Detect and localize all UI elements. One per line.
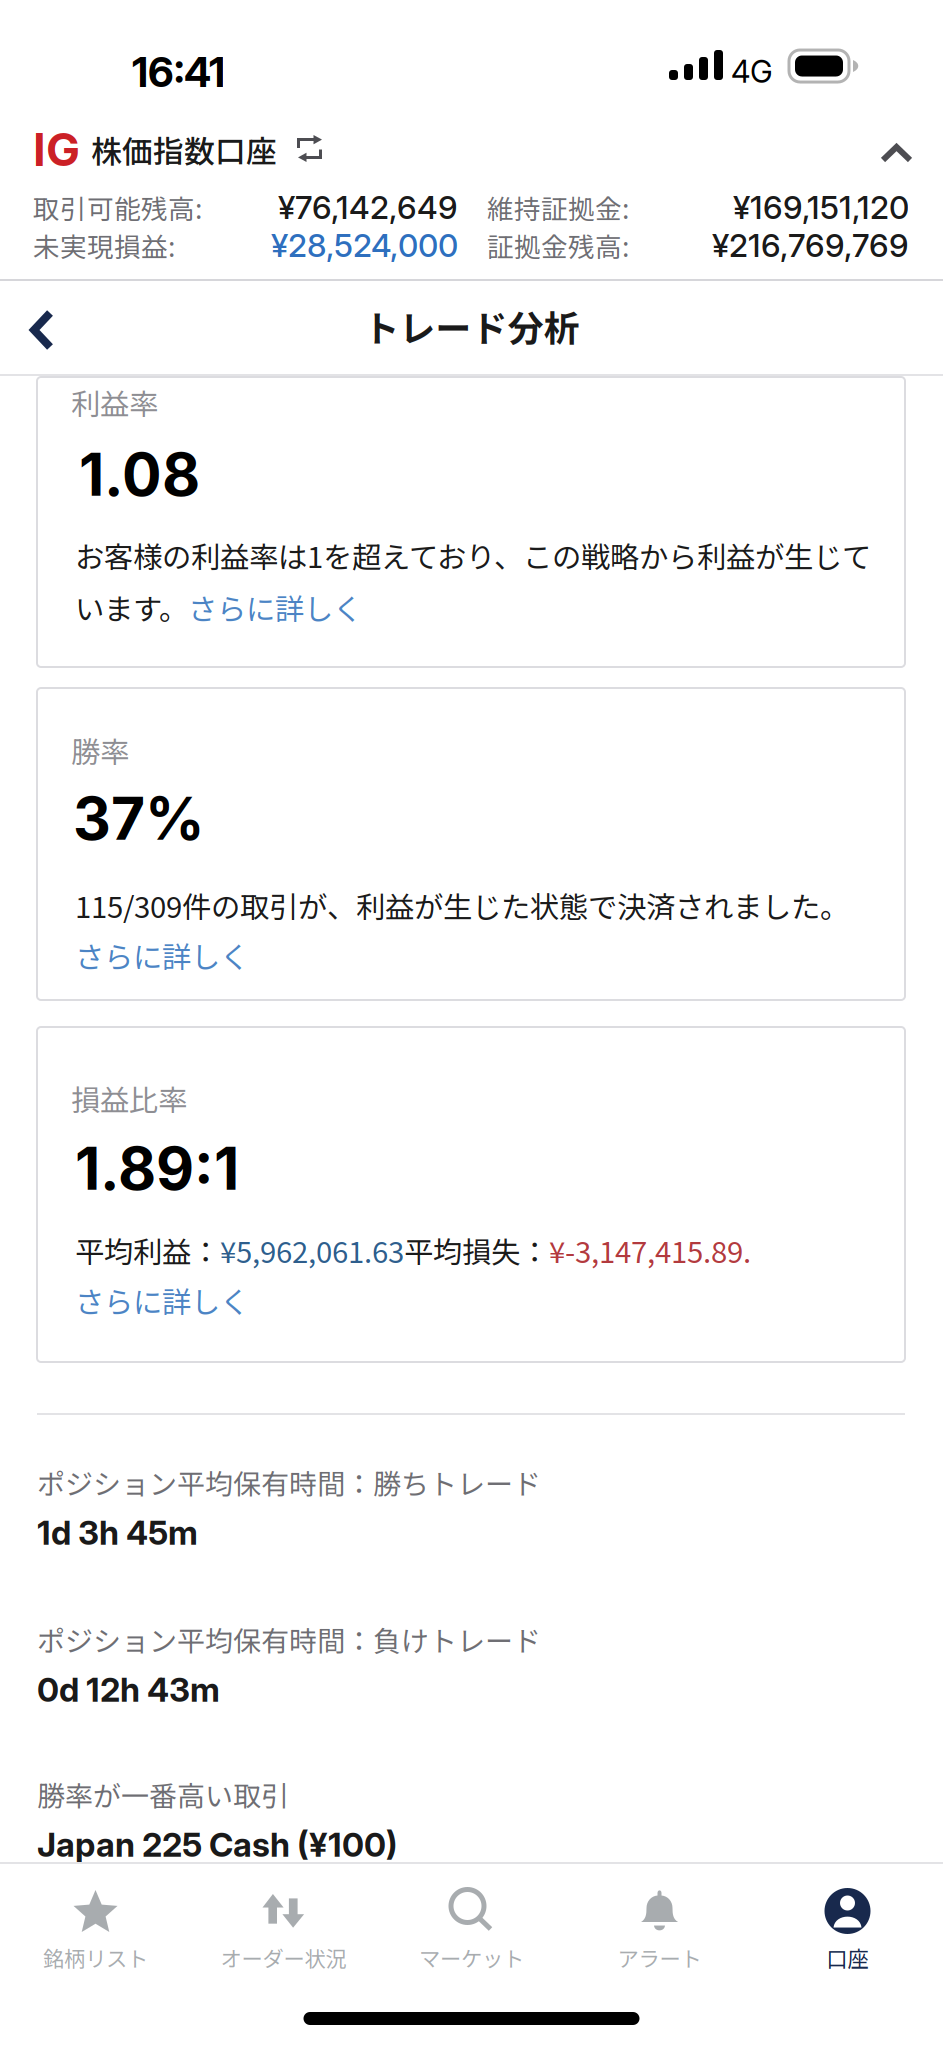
staticText: 勝率が一番高い取引 (37, 1774, 289, 1814)
staticText: 115/309件の取引が、利益が生じた状態で決済されました。 (75, 884, 849, 926)
staticText: ¥76,142,649 (278, 188, 458, 227)
button[interactable]: さらに詳しく (75, 1279, 249, 1321)
staticText: ¥169,151,120 (733, 188, 909, 227)
staticText: トレード分析 (363, 300, 579, 352)
staticText: IG (33, 122, 80, 177)
staticText: さらに詳しく (188, 586, 362, 628)
staticText: ポジション平均保有時間：勝ちトレード (37, 1462, 541, 1502)
staticText: 平均損失： (404, 1229, 549, 1271)
staticText: マーケット (419, 1942, 524, 1973)
staticText: アラート (617, 1942, 701, 1973)
button[interactable]: オーダー状況 (189, 1864, 377, 1974)
staticText: 16:41 (132, 47, 225, 97)
staticText: 37% (73, 783, 205, 854)
staticText: います。 (75, 586, 188, 628)
staticText: 平均利益： (75, 1229, 220, 1271)
staticText: オーダー状況 (220, 1942, 346, 1973)
staticText: 維持証拠金: (487, 188, 629, 227)
staticText: 勝率 (71, 729, 129, 771)
staticText: Japan 225 Cash (¥100) (37, 1824, 398, 1865)
staticText: さらに詳しく (75, 934, 249, 976)
button[interactable]: さらに詳しく (75, 934, 249, 976)
button[interactable]: 折りたたむ (866, 134, 927, 173)
button[interactable]: 口座切替 (289, 128, 331, 170)
staticText: 4G (731, 53, 773, 90)
staticText: 1.08 (79, 439, 200, 510)
button[interactable]: 銘柄リスト (1, 1864, 189, 1974)
staticText: 口座 (826, 1942, 868, 1973)
staticText: ¥5,962,061.63 (220, 1229, 404, 1271)
staticText: 利益率 (71, 381, 158, 423)
staticText: 取引可能残高: (33, 188, 202, 227)
button[interactable]: 口座 (753, 1864, 941, 1974)
staticText: ¥-3,147,415.89. (549, 1229, 751, 1271)
staticText: 1.89:1 (75, 1133, 239, 1204)
button[interactable]: 戻る (9, 297, 75, 363)
staticText: 損益比率 (71, 1077, 187, 1119)
staticText: さらに詳しく (75, 1279, 249, 1321)
staticText: 1d 3h 45m (37, 1512, 198, 1553)
staticText: 証拠金残高: (487, 226, 629, 265)
button[interactable]: アラート (565, 1864, 753, 1974)
staticText: 株価指数口座 (91, 127, 277, 172)
staticText: お客様の利益率は1を超えており、この戦略から利益が生じて (75, 534, 871, 576)
button[interactable]: さらに詳しく (188, 586, 362, 628)
staticText: ¥216,769,769 (712, 226, 909, 265)
staticText: 0d 12h 43m (37, 1669, 220, 1710)
staticText: 未実現損益: (33, 226, 175, 265)
button[interactable]: マーケット (377, 1864, 565, 1974)
staticText: 銘柄リスト (43, 1942, 148, 1973)
staticText: ¥28,524,000 (271, 226, 458, 265)
staticText: ポジション平均保有時間：負けトレード (37, 1619, 541, 1659)
